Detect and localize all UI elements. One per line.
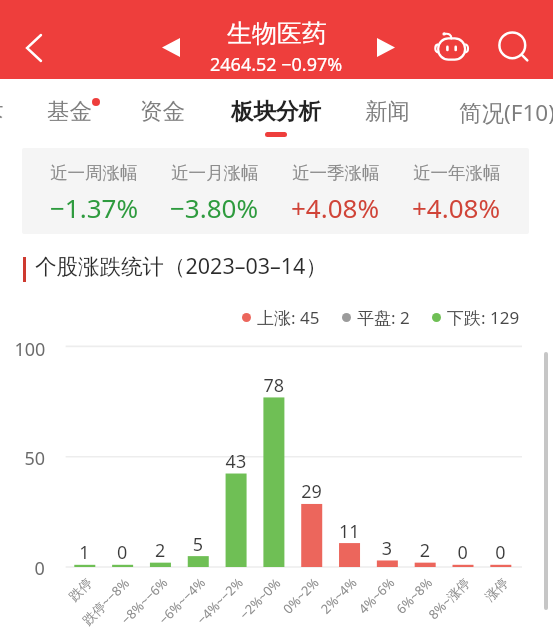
button[interactable]: 简况(F10) <box>436 79 553 140</box>
button[interactable]: Back <box>7 22 59 73</box>
button[interactable]: 近一周涨幅 <box>34 148 154 234</box>
button[interactable]: 术 <box>0 79 6 140</box>
button[interactable]: 平盘: 2 <box>342 306 410 329</box>
staticText: +4.08% <box>412 190 501 225</box>
button[interactable]: Search <box>490 25 536 69</box>
button[interactable]: 近一年涨幅 <box>396 148 517 234</box>
staticText: 基金 <box>47 97 92 125</box>
button[interactable]: 近一季涨幅 <box>275 148 396 234</box>
staticText: 平盘: 2 <box>357 306 410 329</box>
button[interactable]: 基金 <box>24 79 115 140</box>
staticText: 生物医药 <box>227 18 327 49</box>
staticText: 近一周涨幅 <box>50 162 138 184</box>
button[interactable]: 资金 <box>117 79 208 140</box>
button[interactable]: Next sector <box>368 29 404 65</box>
button[interactable]: 近一月涨幅 <box>154 148 275 234</box>
staticText: −1.37% <box>50 190 139 225</box>
staticText: +4.08% <box>291 190 380 225</box>
button[interactable]: 下跌: 129 <box>432 306 520 329</box>
staticText: 个股涨跌统计（2023–03–14） <box>35 251 327 280</box>
staticText: −3.80% <box>170 190 259 225</box>
button[interactable]: 生物医药 <box>188 18 365 77</box>
button[interactable]: Previous sector <box>153 29 189 65</box>
staticText: 近一年涨幅 <box>413 162 501 184</box>
staticText: 近一季涨幅 <box>292 162 380 184</box>
button[interactable]: 个股涨跌统计（2023–03–14） <box>23 251 553 280</box>
staticText: 2464.52 −0.97% <box>210 52 343 77</box>
staticText: 资金 <box>140 97 185 125</box>
staticText: 板块分析 <box>231 97 321 125</box>
button[interactable]: 上涨: 45 <box>242 306 320 329</box>
button[interactable]: 新闻 <box>342 79 433 140</box>
staticText: 近一月涨幅 <box>171 162 259 184</box>
staticText: 上涨: 45 <box>257 306 320 329</box>
staticText: 下跌: 129 <box>447 306 520 329</box>
staticText: 简况(F10) <box>459 97 553 128</box>
staticText: 新闻 <box>365 97 410 125</box>
button[interactable] <box>0 330 553 632</box>
button[interactable]: AI assistant <box>428 25 476 69</box>
button[interactable]: 板块分析 <box>208 79 344 140</box>
